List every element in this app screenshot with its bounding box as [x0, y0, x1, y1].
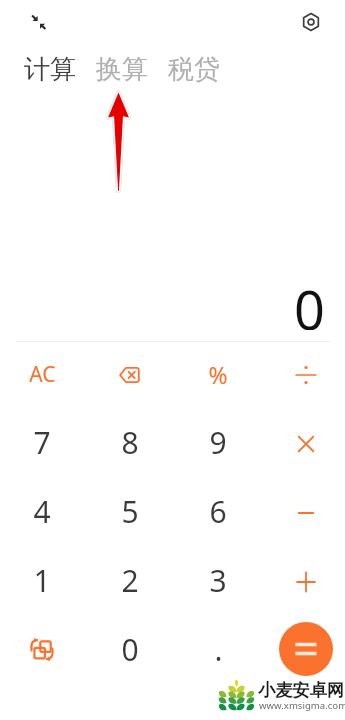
staticText: 6 [209, 491, 227, 532]
button[interactable]: 1 [0, 547, 86, 616]
button[interactable]: 税贷 [164, 53, 224, 86]
staticText: www.xmsigma.com [259, 699, 345, 712]
button[interactable]: 9 [174, 409, 262, 478]
staticText: AC [29, 360, 56, 389]
button[interactable]: Settings [299, 10, 323, 34]
staticText: 4 [33, 491, 51, 532]
button[interactable]: 换算 [92, 53, 152, 86]
button[interactable]: 2 [86, 547, 174, 616]
button[interactable]: 3 [174, 547, 262, 616]
staticText: 1 [33, 560, 51, 601]
button[interactable]: . [174, 616, 262, 685]
button[interactable]: Divide [262, 340, 345, 409]
button[interactable]: Multiply [262, 409, 345, 478]
button[interactable]: 6 [174, 478, 262, 547]
staticText: 换算 [96, 53, 148, 86]
staticText: 3 [209, 560, 227, 601]
button[interactable]: Backspace [86, 340, 174, 409]
staticText: 9 [209, 422, 227, 463]
staticText: 小麦安卓网 [258, 679, 344, 701]
staticText: 5 [121, 491, 139, 532]
staticText: . [214, 629, 223, 670]
button[interactable]: 5 [86, 478, 174, 547]
button[interactable]: Equals [279, 622, 333, 676]
button[interactable]: 7 [0, 409, 86, 478]
button[interactable]: Collapse [26, 10, 50, 34]
staticText: 税贷 [168, 53, 220, 86]
button[interactable]: Convert units [0, 616, 86, 685]
button[interactable]: Minus [262, 478, 345, 547]
button[interactable]: 0 [86, 616, 174, 685]
staticText: 7 [33, 422, 51, 463]
button[interactable]: 8 [86, 409, 174, 478]
button[interactable]: Plus [262, 547, 345, 616]
button[interactable]: AC [0, 340, 86, 409]
staticText: 2 [121, 560, 139, 601]
staticText: 0 [121, 629, 139, 670]
staticText: % [208, 359, 228, 390]
staticText: 计算 [24, 53, 76, 86]
button[interactable]: 4 [0, 478, 86, 547]
button[interactable]: % [174, 340, 262, 409]
staticText: 8 [121, 422, 139, 463]
staticText: 0 [294, 272, 325, 330]
button[interactable]: 计算 [20, 53, 80, 86]
